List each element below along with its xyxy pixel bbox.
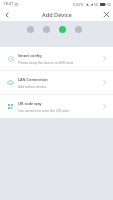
staticText: 18:27 [3, 1, 14, 7]
staticText: QR code way [18, 101, 42, 106]
button[interactable]: LAN Connection [0, 71, 113, 94]
staticText: Add Device [42, 11, 72, 19]
staticText: Smart config [18, 53, 42, 58]
button[interactable]: Back [0, 8, 13, 21]
button[interactable]: QR code way [0, 95, 113, 118]
staticText: Please keep the device in WiFi area [18, 60, 74, 65]
button[interactable]: Close [100, 8, 113, 21]
staticText: 5G [94, 2, 99, 7]
staticText: 0.03% [73, 2, 84, 7]
staticText: Add online device [18, 84, 47, 89]
staticText: LAN Connection [18, 77, 48, 82]
staticText: 92 [107, 2, 111, 7]
button[interactable]: Smart config [0, 47, 113, 70]
staticText: Use camera to scan the QR code [18, 108, 70, 113]
